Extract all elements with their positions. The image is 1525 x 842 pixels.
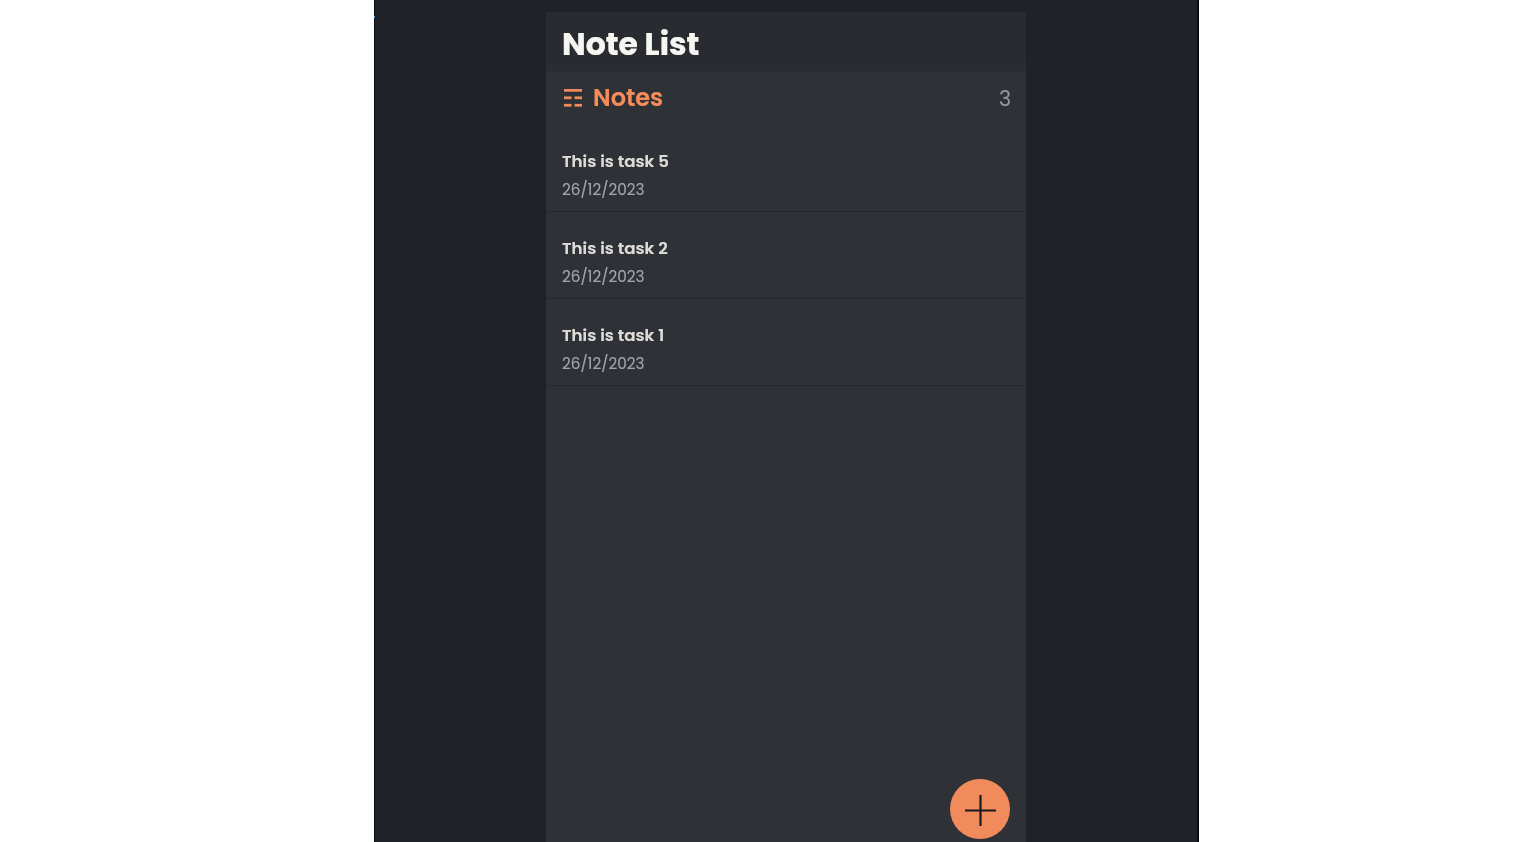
button[interactable]: Add note [950,779,1010,839]
staticText: 26/12/2023 [562,353,645,374]
button[interactable]: This is task 5 [546,125,1026,211]
staticText: This is task 1 [562,324,665,347]
staticText: 3 [999,84,1012,113]
button[interactable]: This is task 1 [546,299,1026,385]
staticText: Notes [593,81,664,115]
staticText: 26/12/2023 [562,266,645,287]
staticText: Note List [562,22,700,66]
staticText: This is task 5 [562,150,669,173]
staticText: 26/12/2023 [562,179,645,200]
button[interactable]: This is task 2 [546,212,1026,298]
staticText: This is task 2 [562,237,668,260]
